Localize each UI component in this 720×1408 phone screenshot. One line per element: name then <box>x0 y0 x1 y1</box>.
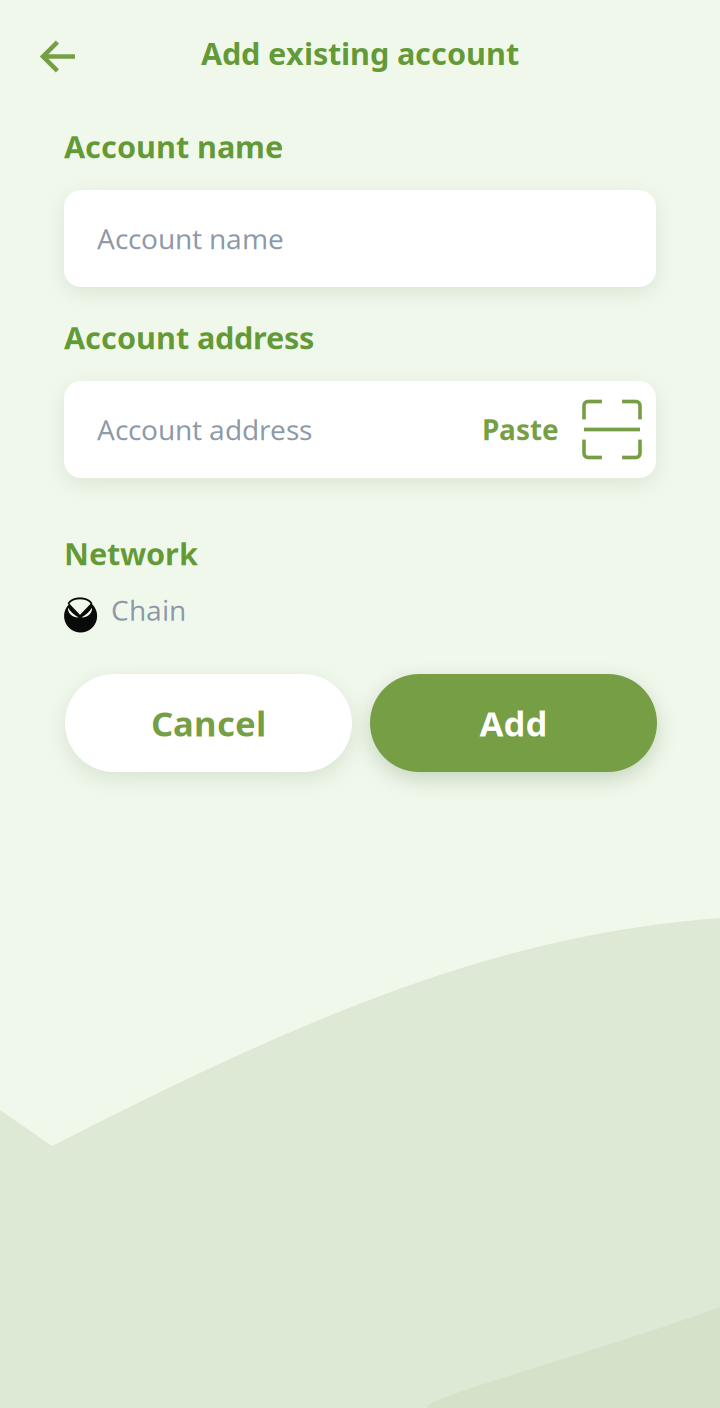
button[interactable]: Back <box>27 25 91 88</box>
staticText: Chain <box>111 591 186 629</box>
button[interactable]: Scan QR code <box>559 401 640 457</box>
staticText: Account name <box>64 126 283 167</box>
button[interactable]: Account name <box>64 190 656 287</box>
button[interactable]: Cancel <box>65 674 352 772</box>
staticText: Account name <box>97 220 284 257</box>
button[interactable]: Chain <box>58 580 186 640</box>
staticText: Account address <box>64 317 314 358</box>
staticText: Cancel <box>151 700 266 746</box>
button[interactable]: Add <box>370 674 657 772</box>
staticText: Add existing account <box>201 33 519 73</box>
staticText: Add <box>479 700 547 746</box>
staticText: Paste <box>482 411 559 448</box>
staticText: Account address <box>97 411 312 448</box>
button[interactable]: Paste <box>482 399 559 460</box>
staticText: Network <box>64 533 198 574</box>
